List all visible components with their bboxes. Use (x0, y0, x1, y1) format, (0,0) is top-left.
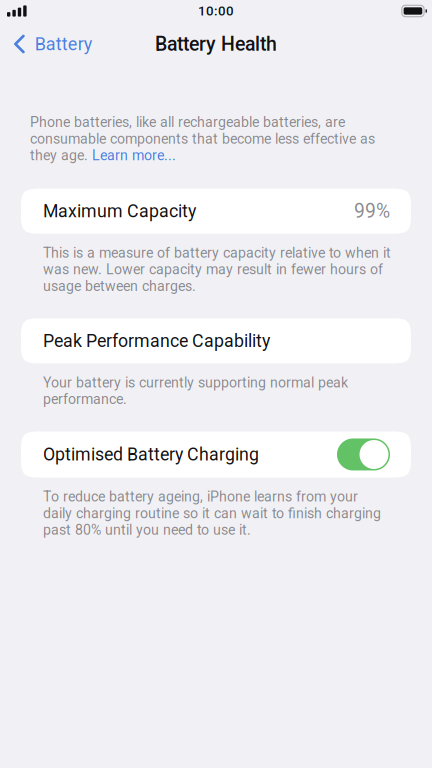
staticText: Battery (35, 33, 93, 55)
staticText: Your battery is currently supporting nor… (43, 374, 348, 391)
staticText: This is a measure of battery capacity re… (43, 245, 391, 261)
staticText: was new. Lower capacity may result in fe… (43, 261, 383, 278)
staticText: Maximum Capacity (43, 201, 196, 222)
staticText: Battery Health (155, 33, 277, 55)
staticText: 99% (354, 200, 390, 223)
staticText: daily charging routine so it can wait to… (43, 505, 381, 522)
staticText: Phone batteries, like all rechargeable b… (30, 114, 345, 131)
button[interactable]: Maximum Capacity (21, 189, 411, 234)
staticText: usage between charges. (43, 278, 196, 294)
staticText: 10:00 (198, 3, 234, 19)
staticText: To reduce battery ageing, iPhone learns … (43, 488, 358, 505)
button[interactable]: Optimised Battery Charging (337, 438, 390, 470)
staticText: Optimised Battery Charging (43, 444, 259, 465)
staticText: Learn more... (92, 147, 176, 164)
staticText: they age. (30, 147, 92, 164)
staticText: Peak Performance Capability (43, 330, 270, 351)
button[interactable]: Peak Performance Capability (21, 318, 411, 363)
staticText: consumable components that become less e… (30, 131, 375, 147)
staticText: performance. (43, 391, 127, 407)
staticText: past 80% until you need to use it. (43, 522, 251, 538)
button[interactable]: Battery (0, 22, 103, 66)
button[interactable]: Optimised Battery Charging (21, 431, 411, 477)
button[interactable]: Learn more... (92, 147, 176, 164)
